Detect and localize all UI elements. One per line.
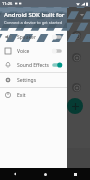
staticText: Exit (17, 92, 26, 99)
button[interactable]: More options (77, 10, 86, 19)
button[interactable]: Settings (0, 73, 67, 87)
button[interactable]: On (51, 61, 63, 69)
button[interactable]: Add (67, 98, 83, 114)
button[interactable] (0, 80, 90, 94)
button[interactable]: Off (51, 33, 63, 41)
button[interactable]: Voice Detection (0, 44, 67, 58)
staticText: Speaker (17, 34, 51, 41)
button[interactable]: Home (30, 168, 60, 180)
staticText: Settings (17, 77, 37, 84)
button[interactable]: Back (0, 168, 30, 180)
button[interactable]: Recents (60, 168, 90, 180)
button[interactable]: Off (51, 47, 63, 55)
button[interactable]: Speaker (0, 30, 67, 44)
button[interactable]: Exit (0, 88, 67, 102)
staticText: Voice Detection (17, 48, 51, 55)
button[interactable] (0, 28, 90, 42)
staticText: Connect a device to get started (4, 20, 63, 25)
staticText: 11:26 (2, 1, 13, 6)
button[interactable] (0, 50, 90, 64)
staticText: Android SDK built for x86 (4, 11, 67, 19)
button[interactable]: Sound Effects (0, 58, 67, 72)
staticText: Sound Effects (17, 62, 51, 69)
